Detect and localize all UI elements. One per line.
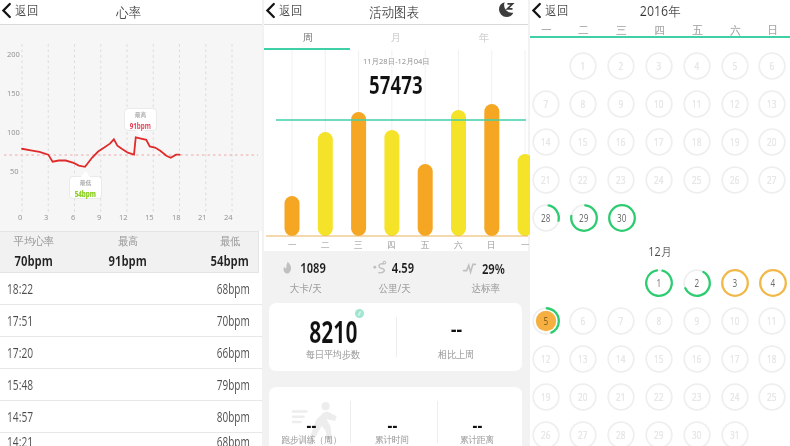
staticText: 17:20	[7, 344, 34, 362]
button[interactable]: 16	[607, 128, 635, 156]
staticText: 13	[578, 352, 588, 366]
button[interactable]: 6	[758, 52, 786, 80]
button[interactable]: 24	[721, 383, 749, 411]
button[interactable]: 2	[683, 269, 711, 297]
staticText: 80bpm	[217, 408, 250, 426]
staticText: 心率	[116, 4, 141, 21]
button[interactable]: 26	[532, 421, 560, 446]
button[interactable]: 10	[645, 90, 673, 118]
staticText: 19	[730, 135, 740, 149]
button[interactable]: 3	[645, 52, 673, 80]
staticText: 26	[541, 428, 551, 442]
button[interactable]: 1089	[265, 251, 345, 302]
staticText: 21	[541, 173, 551, 187]
button[interactable]: 8210	[269, 303, 522, 371]
staticText: 15	[145, 212, 154, 222]
staticText: 累计距离	[460, 434, 494, 446]
button[interactable]: 20	[569, 383, 597, 411]
button[interactable]: 年	[440, 25, 528, 50]
button[interactable]: 12	[721, 90, 749, 118]
button[interactable]: 1	[569, 52, 597, 80]
button[interactable]: 15	[645, 345, 673, 373]
button[interactable]: 29	[570, 204, 598, 232]
button[interactable]: 31	[721, 421, 749, 446]
button[interactable]: 7	[607, 307, 635, 335]
button[interactable]: 22	[645, 383, 673, 411]
button[interactable]: 13	[569, 345, 597, 373]
button[interactable]: 21	[532, 166, 560, 194]
button[interactable]: 8	[645, 307, 673, 335]
button[interactable]: 6	[569, 307, 597, 335]
button[interactable]: 14:21	[0, 433, 262, 446]
button[interactable]: 25	[758, 383, 786, 411]
staticText: 14	[616, 352, 626, 366]
button[interactable]: 4.59	[355, 251, 435, 302]
button[interactable]: 14	[607, 345, 635, 373]
button[interactable]: 返回	[264, 1, 307, 20]
button[interactable]: 5	[532, 307, 560, 335]
staticText: --	[451, 315, 462, 342]
button[interactable]: 17	[721, 345, 749, 373]
button[interactable]: 周	[264, 25, 352, 50]
staticText: 12月	[648, 243, 672, 259]
staticText: 18:22	[7, 280, 34, 298]
button[interactable]: 26	[721, 166, 749, 194]
staticText: 二	[321, 240, 330, 251]
staticText: 最高	[118, 234, 138, 248]
staticText: 21	[616, 390, 626, 404]
button[interactable]: 15	[569, 128, 597, 156]
button[interactable]: 17:51	[0, 305, 262, 336]
button[interactable]: 18	[683, 128, 711, 156]
button[interactable]: Sleep mode	[498, 1, 514, 17]
button[interactable]: 4	[759, 269, 787, 297]
button[interactable]: 9	[683, 307, 711, 335]
button[interactable]: 月	[352, 25, 440, 50]
button[interactable]: 18:22	[0, 273, 262, 304]
staticText: 28	[616, 428, 626, 442]
button[interactable]: 22	[569, 166, 597, 194]
button[interactable]: 返回	[530, 1, 573, 20]
button[interactable]: 19	[721, 128, 749, 156]
button[interactable]: 23	[607, 166, 635, 194]
button[interactable]: 11	[683, 90, 711, 118]
button[interactable]: 28	[532, 204, 560, 232]
button[interactable]: 18	[758, 345, 786, 373]
button[interactable]: 3	[721, 269, 749, 297]
button[interactable]: 20	[758, 128, 786, 156]
button[interactable]: 12	[532, 345, 560, 373]
button[interactable]: 27	[758, 166, 786, 194]
staticText: 17	[730, 352, 740, 366]
button[interactable]: 11	[758, 307, 786, 335]
button[interactable]: 24	[645, 166, 673, 194]
button[interactable]: 7	[532, 90, 560, 118]
button[interactable]: 1	[645, 269, 673, 297]
button[interactable]: 13	[758, 90, 786, 118]
staticText: 68bpm	[217, 280, 250, 298]
button[interactable]: 29%	[445, 251, 525, 302]
button[interactable]: 15:48	[0, 369, 262, 400]
button[interactable]: 5	[721, 52, 749, 80]
button[interactable]: 21	[607, 383, 635, 411]
button[interactable]: 10	[721, 307, 749, 335]
button[interactable]: 2	[607, 52, 635, 80]
button[interactable]: 14	[532, 128, 560, 156]
button[interactable]: 29	[645, 421, 673, 446]
button[interactable]: 返回	[0, 1, 43, 20]
button[interactable]: 9	[607, 90, 635, 118]
staticText: 15	[654, 352, 664, 366]
button[interactable]: 17	[645, 128, 673, 156]
button[interactable]: 23	[683, 383, 711, 411]
button[interactable]: 30	[683, 421, 711, 446]
staticText: 1089	[300, 258, 327, 277]
button[interactable]: 8	[569, 90, 597, 118]
button[interactable]: 16	[683, 345, 711, 373]
button[interactable]: 30	[608, 204, 636, 232]
button[interactable]: 19	[532, 383, 560, 411]
button[interactable]: 4	[683, 52, 711, 80]
button[interactable]: 27	[569, 421, 597, 446]
button[interactable]: 28	[607, 421, 635, 446]
button[interactable]: 25	[683, 166, 711, 194]
button[interactable]: --	[269, 387, 522, 446]
button[interactable]: 14:57	[0, 401, 262, 432]
button[interactable]: 17:20	[0, 337, 262, 368]
